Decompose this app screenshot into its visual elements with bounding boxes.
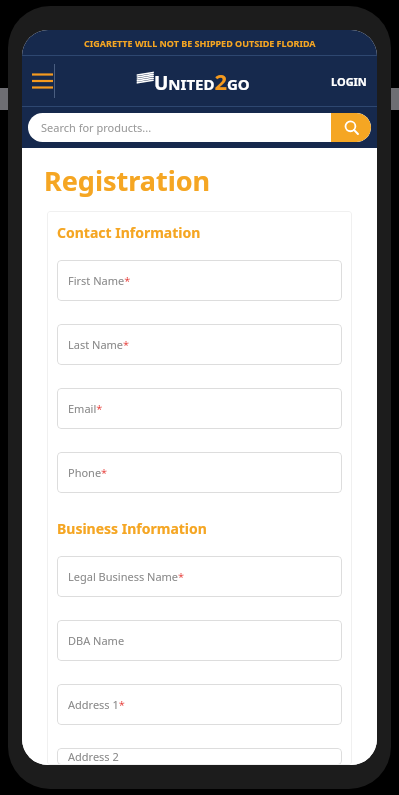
staticText: Address 1* bbox=[68, 697, 125, 712]
staticText: Address 2 bbox=[68, 749, 119, 764]
staticText: Registration bbox=[44, 162, 211, 199]
staticText: Contact Information bbox=[57, 223, 201, 242]
button[interactable]: Menu bbox=[24, 63, 60, 99]
button[interactable]: LOGIN bbox=[325, 66, 373, 97]
staticText: Legal Business Name* bbox=[68, 569, 185, 584]
button[interactable]: Legal Business Name* bbox=[57, 556, 342, 597]
staticText: Last Name* bbox=[68, 337, 130, 352]
button[interactable]: First Name* bbox=[57, 260, 342, 301]
button[interactable]: United2Go home bbox=[137, 66, 250, 96]
staticText: UNITED2GO bbox=[154, 66, 250, 96]
button[interactable]: Email* bbox=[57, 388, 342, 429]
staticText: LOGIN bbox=[331, 74, 367, 89]
button[interactable]: Address 1* bbox=[57, 684, 342, 725]
staticText: DBA Name bbox=[68, 633, 125, 648]
button[interactable]: Search for products... bbox=[28, 113, 371, 142]
staticText: Phone* bbox=[68, 465, 108, 480]
staticText: Search for products... bbox=[41, 120, 331, 135]
button[interactable]: Last Name* bbox=[57, 324, 342, 365]
staticText: First Name* bbox=[68, 273, 131, 288]
staticText: Email* bbox=[68, 401, 103, 416]
button[interactable]: Phone* bbox=[57, 452, 342, 493]
button[interactable]: Search bbox=[331, 113, 371, 142]
staticText: CIGARETTE WILL NOT BE SHIPPED OUTSIDE FL… bbox=[84, 37, 316, 49]
staticText: Business Information bbox=[57, 519, 207, 538]
button[interactable]: DBA Name bbox=[57, 620, 342, 661]
button[interactable]: Address 2 bbox=[57, 748, 342, 765]
